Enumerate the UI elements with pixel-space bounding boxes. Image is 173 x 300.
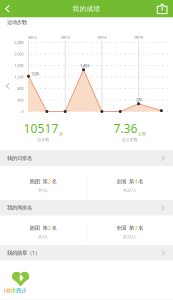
staticText: 08/18 (134, 34, 143, 40)
staticText: 总公里数 (122, 137, 138, 142)
staticText: 7.36 (113, 120, 137, 136)
staticText: 运动步数 (7, 19, 27, 25)
staticText: 我的周排名 (7, 204, 32, 211)
staticText: 名 (138, 225, 143, 231)
staticText: 2,400 (14, 40, 23, 45)
staticText: 400 (17, 97, 23, 103)
staticText: 1226 (31, 71, 39, 76)
staticText: 0 (21, 109, 23, 114)
staticText: 跑 (16, 287, 21, 294)
button[interactable]: Share (151, 0, 173, 17)
staticText: 2,000 (14, 51, 23, 57)
staticText: 第 (40, 178, 47, 185)
staticText: 第 (127, 225, 134, 231)
staticText: 08/14 (61, 34, 70, 40)
staticText: 1,600 (14, 63, 23, 68)
staticText: 10517 (23, 120, 58, 136)
staticText: 公里 (138, 131, 146, 136)
staticText: 名 (52, 178, 57, 185)
button[interactable]: 我的勋章（1） (0, 245, 173, 260)
staticText: 3 (134, 224, 137, 232)
staticText: 健 (5, 287, 10, 294)
staticText: i (4, 287, 5, 294)
staticText: 步 (59, 131, 63, 136)
staticText: 我的勋章（1） (7, 249, 40, 256)
staticText: 4 (134, 178, 137, 185)
staticText: 康 (11, 287, 16, 294)
staticText: 08/16 (97, 34, 106, 40)
staticText: 第 (40, 225, 47, 231)
button[interactable]: Back (0, 0, 16, 17)
staticText: 跑团 (30, 225, 40, 231)
staticText: 2 (48, 178, 51, 185)
staticText: 共227人 (123, 187, 137, 193)
staticText: 1,200 (14, 74, 23, 80)
staticText: 270 (136, 97, 142, 102)
staticText: 08/12 (28, 34, 37, 40)
staticText: 步 (22, 287, 27, 294)
button[interactable]: 我的日排名 (0, 150, 173, 166)
staticText: 名 (138, 178, 143, 185)
staticText: 共9人 (38, 187, 48, 193)
staticText: 跑团 (30, 178, 40, 185)
staticText: 全国 (116, 225, 126, 231)
staticText: 共227人 (123, 234, 137, 239)
staticText: 2 (48, 224, 51, 232)
staticText: 我的成绩 (72, 5, 100, 13)
staticText: 第 (127, 178, 134, 185)
button[interactable]: 我的周排名 (0, 200, 173, 215)
staticText: 名 (52, 225, 57, 231)
staticText: 800 (17, 86, 23, 91)
staticText: 总步数 (37, 137, 49, 142)
staticText: 1,453 (80, 63, 89, 68)
staticText: 我的日排名 (7, 155, 32, 162)
staticText: 共9人 (38, 234, 48, 239)
staticText: 全国 (116, 178, 126, 185)
